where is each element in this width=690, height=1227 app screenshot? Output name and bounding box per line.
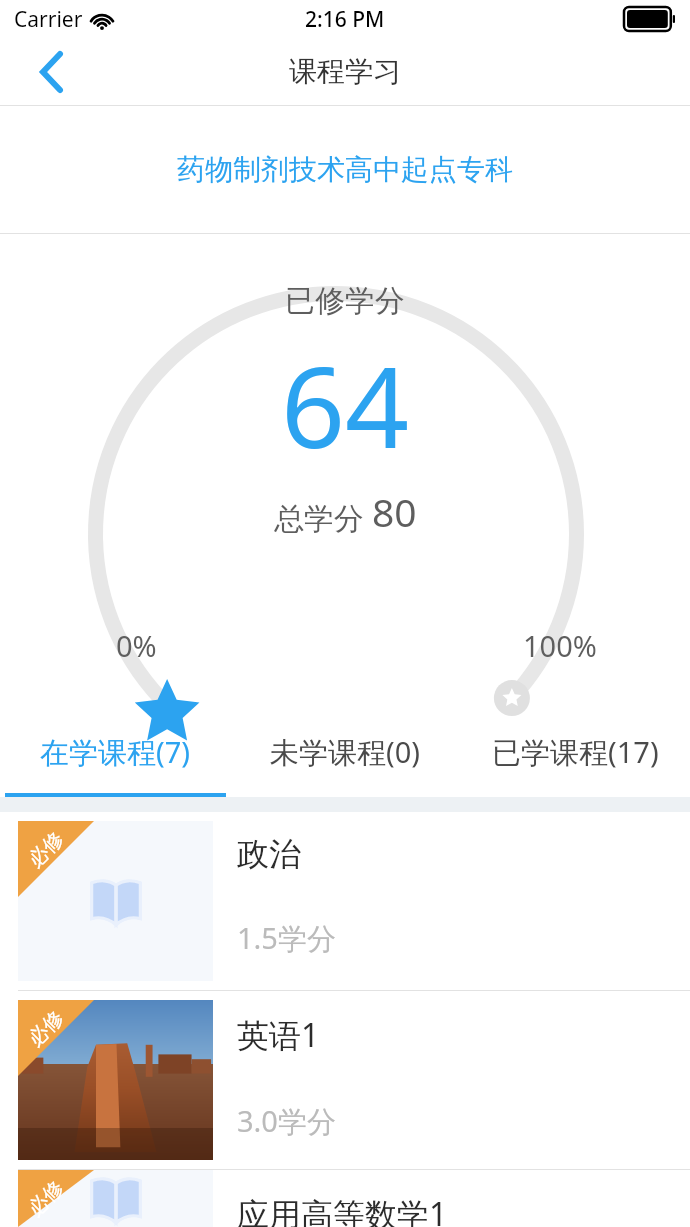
button[interactable]: Back (20, 41, 82, 103)
staticText: 2:16 PM (305, 5, 385, 34)
staticText: 必修 (23, 1175, 69, 1221)
button[interactable]: 必修 (0, 1170, 690, 1227)
staticText: 已修学分 (285, 282, 405, 320)
staticText: 在学课程(7) (40, 732, 190, 772)
staticText: 3.0学分 (237, 1101, 336, 1141)
staticText: 未学课程(0) (270, 732, 420, 772)
staticText: 1.5学分 (237, 918, 336, 958)
staticText: 必修 (23, 826, 69, 872)
staticText: 总学分 (274, 497, 372, 538)
button[interactable]: 已学课程(17) (460, 717, 690, 797)
staticText: 80 (372, 485, 417, 538)
staticText: 64 (281, 328, 410, 481)
staticText: 必修 (23, 1005, 69, 1051)
button[interactable]: 未学课程(0) (230, 717, 460, 797)
staticText: 已学课程(17) (492, 732, 659, 772)
button[interactable]: 必修 (0, 991, 690, 1169)
staticText: 英语1 (237, 1013, 320, 1057)
button[interactable]: 必修 (0, 812, 690, 990)
staticText: 药物制剂技术高中起点专科 (177, 152, 513, 187)
staticText: 政治 (237, 834, 301, 874)
staticText: 0% (116, 626, 157, 665)
staticText: 课程学习 (289, 54, 401, 89)
button[interactable]: 药物制剂技术高中起点专科 (0, 106, 690, 233)
staticText: 应用高等数学1 (237, 1192, 448, 1227)
staticText: 100% (523, 626, 597, 665)
button[interactable]: 在学课程(7) (0, 717, 230, 797)
staticText: Carrier (14, 5, 83, 34)
